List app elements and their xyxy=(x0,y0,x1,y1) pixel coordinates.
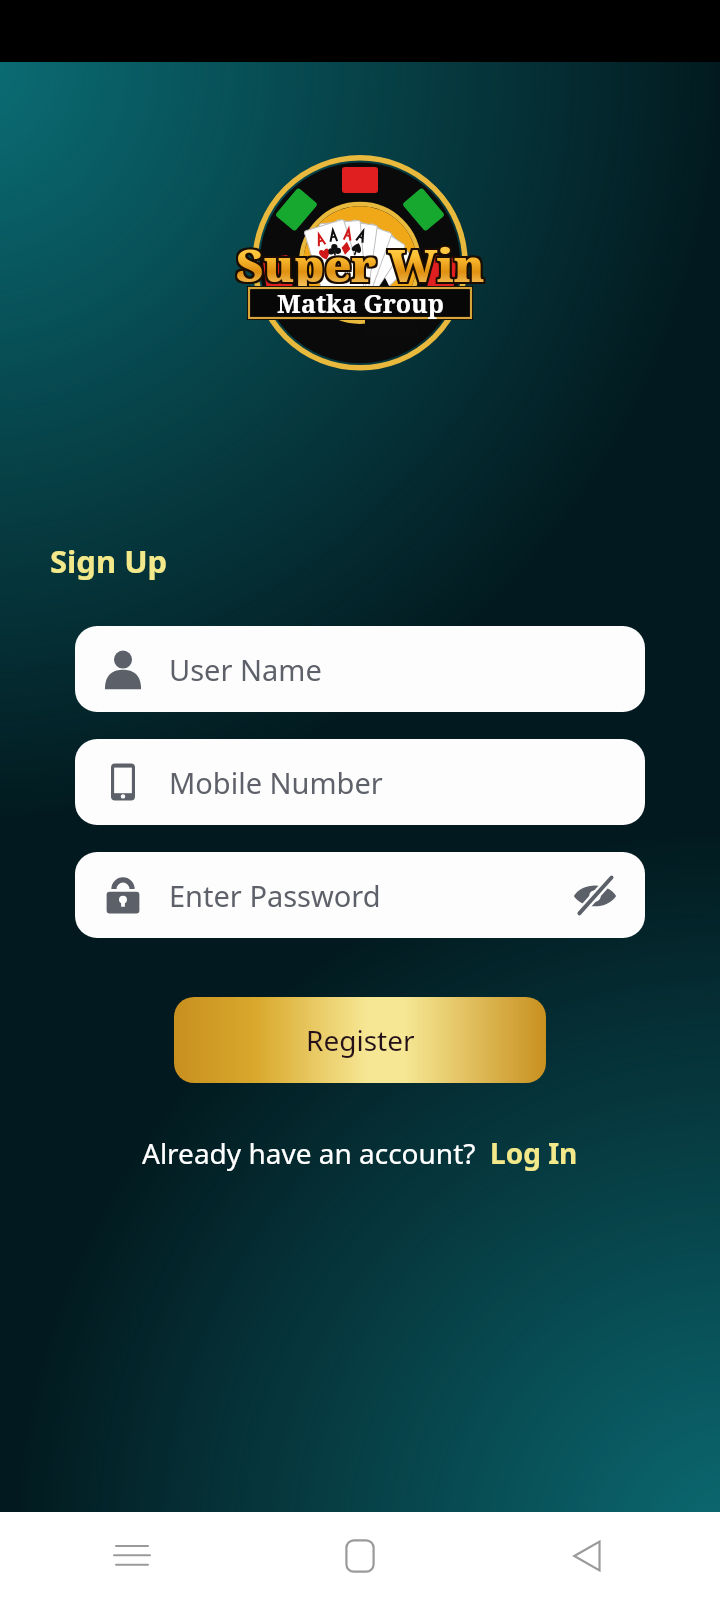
staticText: Sign Up xyxy=(50,540,168,582)
button[interactable]: Register xyxy=(174,997,546,1083)
staticText: Super Win xyxy=(238,236,487,297)
staticText: Super Win xyxy=(236,236,485,297)
staticText: Super Win xyxy=(234,232,483,293)
staticText: Super Win xyxy=(234,236,483,297)
staticText: Mobile Number xyxy=(169,763,383,802)
staticText: Super Win xyxy=(236,234,485,295)
button[interactable]: Mobile Number xyxy=(75,739,645,825)
staticText: Super Win xyxy=(234,234,483,295)
staticText: User Name xyxy=(169,650,322,689)
staticText: Already have an account? xyxy=(142,1134,476,1172)
staticText: Super Win xyxy=(238,234,487,295)
staticText: Enter Password xyxy=(169,876,381,915)
button[interactable]: Back xyxy=(552,1520,624,1592)
button[interactable]: User Name xyxy=(75,626,645,712)
button[interactable]: Home xyxy=(324,1520,396,1592)
staticText: Log In xyxy=(490,1134,578,1172)
staticText: Super Win xyxy=(236,232,485,293)
button[interactable]: Show password xyxy=(571,871,619,919)
staticText: Matka Group xyxy=(277,286,444,320)
button[interactable]: Enter Password xyxy=(75,852,645,938)
staticText: Register xyxy=(306,1021,415,1059)
staticText: Super Win xyxy=(238,232,487,293)
button[interactable]: Recent apps xyxy=(96,1520,168,1592)
button[interactable]: Log In xyxy=(490,1134,578,1172)
